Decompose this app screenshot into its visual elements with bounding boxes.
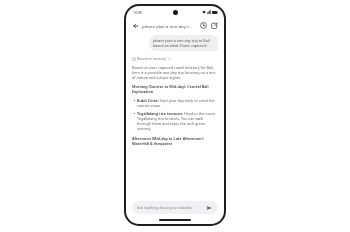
- staticText: Afternoon (Mid-day to Late Afternoon): W…: [132, 136, 218, 146]
- staticText: Ask anything about your calendar: [137, 205, 205, 210]
- button[interactable]: Back: [130, 20, 141, 31]
- staticText: Bukit Cinta: Start your day early to cat…: [137, 98, 218, 108]
- staticText: 10:08: [133, 10, 142, 15]
- button[interactable]: please plan a one-day trip to Bali based…: [149, 35, 218, 51]
- staticText: Based on memory: [137, 56, 167, 61]
- button[interactable]: Based on memory: [132, 55, 171, 62]
- staticText: please plan a one-day trip to Bali based…: [153, 38, 214, 48]
- button[interactable]: Ask anything about your calendar: [132, 201, 218, 214]
- staticText: Based on your captured travel itinerary …: [132, 65, 218, 80]
- button[interactable]: New chat: [209, 20, 220, 31]
- staticText: Tegallalang rice terraces: Head to the i…: [137, 111, 218, 131]
- button[interactable]: Send: [205, 204, 213, 212]
- staticText: Morning (Sunrise to Mid-day): Central Ba…: [132, 84, 218, 94]
- staticText: please plan a one-day t...: [142, 23, 198, 29]
- button[interactable]: History: [198, 20, 209, 31]
